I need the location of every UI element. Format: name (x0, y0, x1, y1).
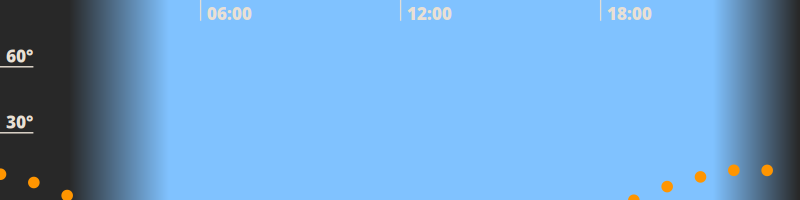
staticText: 12:00 (407, 2, 452, 25)
staticText: 18:00 (607, 2, 652, 25)
button[interactable]: Sun altitude chart (0, 0, 800, 200)
staticText: 06:00 (207, 2, 252, 25)
staticText: 60° (6, 44, 33, 67)
staticText: 30° (6, 110, 33, 133)
